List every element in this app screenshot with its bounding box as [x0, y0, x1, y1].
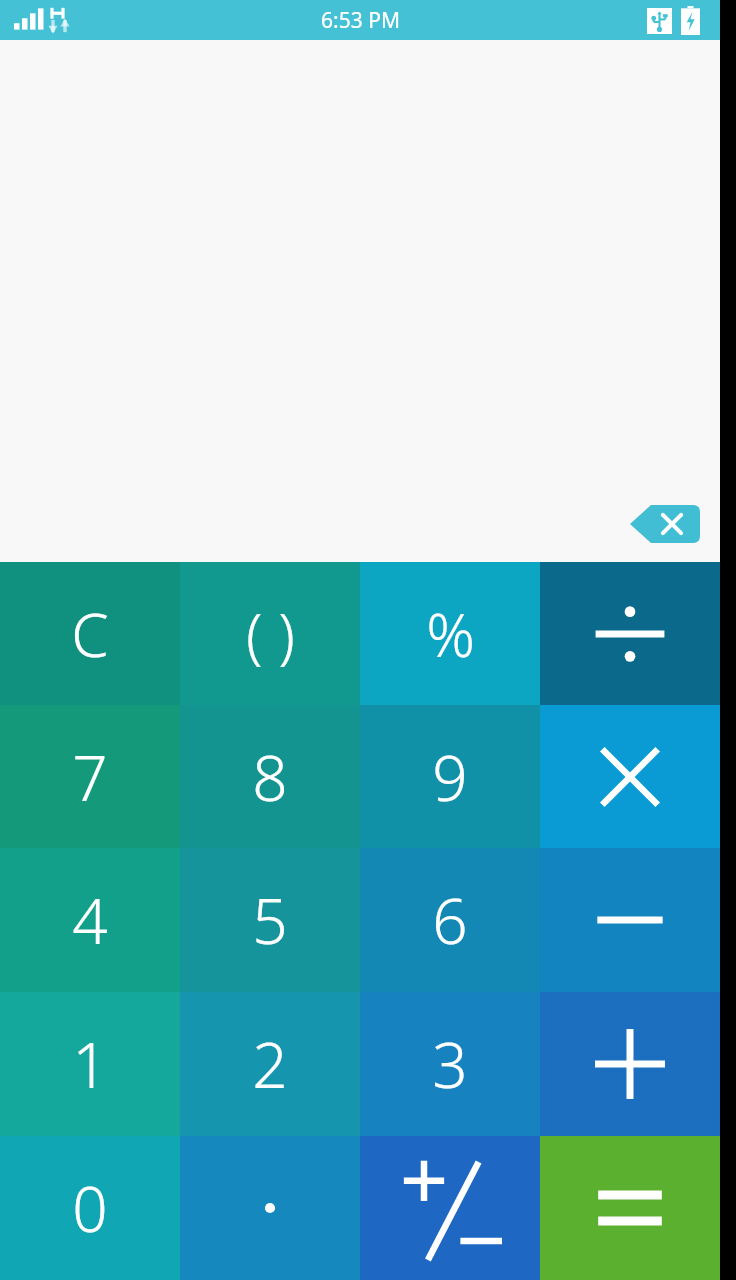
- button[interactable]: +: [540, 992, 720, 1136]
- button[interactable]: 4: [0, 848, 180, 992]
- button[interactable]: 7: [0, 705, 180, 848]
- button[interactable]: C: [0, 562, 180, 705]
- button[interactable]: ×: [540, 705, 720, 848]
- button[interactable]: ÷: [540, 562, 720, 705]
- staticText: 8: [252, 735, 288, 819]
- staticText: 6:53 PM: [321, 6, 400, 35]
- button[interactable]: +/-: [360, 1136, 540, 1280]
- staticText: %: [426, 593, 475, 675]
- staticText: 1: [72, 1022, 108, 1106]
- button[interactable]: =: [540, 1136, 720, 1280]
- button[interactable]: 5: [180, 848, 360, 992]
- staticText: 7: [72, 735, 108, 819]
- staticText: 9: [432, 735, 468, 819]
- button[interactable]: 0: [0, 1136, 180, 1280]
- staticText: C: [71, 593, 109, 675]
- staticText: 6: [432, 878, 468, 962]
- button[interactable]: 2: [180, 992, 360, 1136]
- button[interactable]: 6: [360, 848, 540, 992]
- button[interactable]: −: [540, 848, 720, 992]
- button[interactable]: Backspace: [630, 505, 700, 543]
- button[interactable]: ( ): [180, 562, 360, 705]
- button[interactable]: .: [180, 1136, 360, 1280]
- staticText: 2: [252, 1022, 288, 1106]
- button[interactable]: 1: [0, 992, 180, 1136]
- button[interactable]: 9: [360, 705, 540, 848]
- button[interactable]: 3: [360, 992, 540, 1136]
- staticText: 0: [72, 1166, 108, 1250]
- button[interactable]: %: [360, 562, 540, 705]
- button[interactable]: 8: [180, 705, 360, 848]
- staticText: 3: [432, 1022, 468, 1106]
- staticText: 4: [72, 878, 108, 962]
- staticText: 5: [252, 878, 288, 962]
- staticText: ( ): [246, 593, 295, 675]
